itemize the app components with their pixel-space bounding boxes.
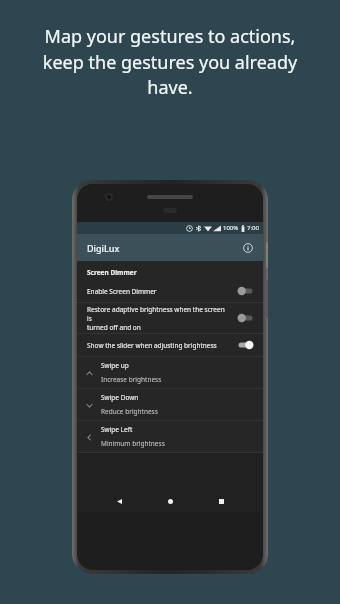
button[interactable]: Back xyxy=(110,492,128,510)
staticText: 100% xyxy=(223,224,239,232)
button[interactable]: Restore adaptive brightness when the scr… xyxy=(77,303,263,333)
staticText: Enable Screen Dimmer xyxy=(87,287,231,296)
staticText: Increase brightness xyxy=(101,375,162,384)
button[interactable]: Home xyxy=(161,492,179,510)
button[interactable]: Recents xyxy=(212,492,230,510)
staticText: Show the slider when adjusting brightnes… xyxy=(87,341,231,350)
button[interactable]: Swipe Down xyxy=(77,389,263,420)
button[interactable]: Swipe Left xyxy=(77,421,263,452)
staticText: Restore adaptive brightness when the scr… xyxy=(87,305,231,332)
staticText: Minimum brightness xyxy=(101,439,165,448)
button[interactable]: Show the slider when adjusting brightnes… xyxy=(77,334,263,356)
staticText: Reduce brightness xyxy=(101,407,158,416)
staticText: Swipe Left xyxy=(101,425,133,434)
staticText: Screen Dimmer xyxy=(87,268,137,277)
staticText: Swipe up xyxy=(101,361,129,370)
staticText: DigiLux xyxy=(87,242,120,254)
staticText: Map your gestures to actions, keep the g… xyxy=(14,24,326,99)
button[interactable]: Swipe up xyxy=(77,357,263,388)
staticText: 7:00 xyxy=(247,224,259,232)
button[interactable]: Info xyxy=(240,240,256,256)
button[interactable]: Enable Screen Dimmer xyxy=(77,280,263,302)
staticText: Swipe Down xyxy=(101,393,139,402)
